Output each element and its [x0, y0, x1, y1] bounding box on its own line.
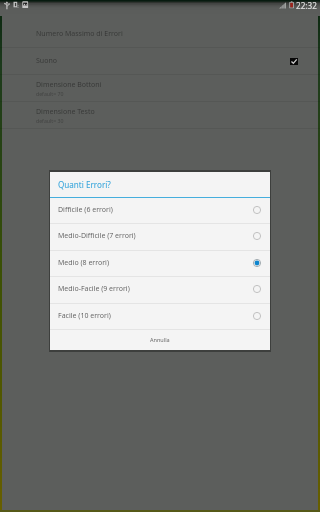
- staticText: Quanti Errori?: [58, 179, 111, 190]
- button[interactable]: Difficile (6 errori): [50, 198, 270, 223]
- button[interactable]: Dimensione Testo: [0, 102, 320, 129]
- button[interactable]: Numero Massimo di Errori: [0, 21, 320, 48]
- staticText: Suono: [36, 56, 57, 66]
- staticText: default= 70: [36, 90, 64, 97]
- staticText: Difficile (6 errori): [58, 205, 113, 215]
- button[interactable]: Medio-Facile (9 errori): [50, 277, 270, 303]
- staticText: Facile (10 errori): [58, 311, 111, 321]
- staticText: Medio (8 errori): [58, 258, 110, 268]
- button[interactable]: Medio (8 errori): [50, 251, 270, 276]
- staticText: Numero Massimo di Errori: [36, 29, 123, 39]
- button[interactable]: Annulla: [50, 330, 270, 350]
- staticText: Medio-Difficile (7 errori): [58, 231, 136, 241]
- staticText: Dimensione Bottoni: [36, 80, 102, 90]
- staticText: Annulla: [150, 336, 170, 343]
- button[interactable]: Suono: [0, 48, 320, 75]
- button[interactable]: Medio-Difficile (7 errori): [50, 224, 270, 250]
- staticText: default= 30: [36, 117, 64, 124]
- staticText: Dimensione Testo: [36, 107, 95, 117]
- staticText: Medio-Facile (9 errori): [58, 284, 130, 294]
- other: Suono enabled: [290, 58, 298, 65]
- button[interactable]: Facile (10 errori): [50, 304, 270, 329]
- button[interactable]: Dimensione Bottoni: [0, 75, 320, 102]
- staticText: 22:32: [296, 0, 317, 11]
